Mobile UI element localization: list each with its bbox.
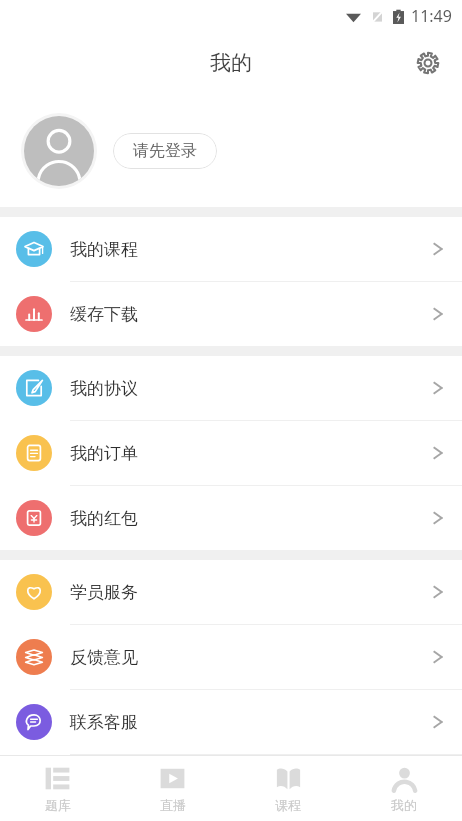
staticText: 反馈意见 — [70, 647, 138, 668]
staticText: 我的 — [391, 797, 417, 813]
button[interactable]: 我的红包 — [0, 486, 462, 550]
staticText: 题库 — [45, 797, 71, 813]
staticText: 我的 — [210, 50, 252, 76]
staticText: 课程 — [275, 797, 301, 813]
button[interactable]: 我的 — [346, 756, 462, 821]
button[interactable]: 反馈意见 — [0, 625, 462, 690]
staticText: 我的订单 — [70, 443, 138, 464]
staticText: 直播 — [160, 797, 186, 813]
staticText: 缓存下载 — [70, 304, 138, 325]
button[interactable]: 课程 — [230, 756, 346, 821]
button[interactable]: 学员服务 — [0, 560, 462, 625]
button[interactable]: 请先登录 — [113, 133, 217, 169]
button[interactable]: 我的协议 — [0, 356, 462, 421]
staticText: 我的红包 — [70, 508, 138, 529]
button[interactable]: 我的课程 — [0, 217, 462, 282]
button[interactable]: 我的订单 — [0, 421, 462, 486]
staticText: 我的协议 — [70, 378, 138, 399]
button[interactable]: Settings — [406, 41, 450, 85]
staticText: 我的课程 — [70, 239, 138, 260]
staticText: 请先登录 — [133, 141, 197, 161]
staticText: 学员服务 — [70, 582, 138, 603]
button[interactable]: 缓存下载 — [0, 282, 462, 346]
staticText: 11:49 — [411, 5, 452, 27]
button[interactable]: 联系客服 — [0, 690, 462, 755]
button[interactable]: 直播 — [115, 756, 230, 821]
button[interactable]: 题库 — [0, 756, 115, 821]
staticText: 联系客服 — [70, 712, 138, 733]
